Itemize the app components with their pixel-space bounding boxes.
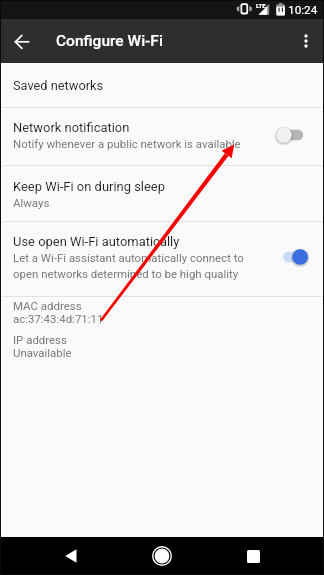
button[interactable]: On — [274, 246, 306, 268]
button[interactable]: Off — [274, 124, 306, 146]
staticText: Configure Wi-Fi — [56, 32, 163, 50]
button[interactable]: Use open Wi-Fi automatically — [0, 222, 324, 296]
button[interactable]: Saved networks — [0, 63, 324, 107]
button[interactable]: IP address — [0, 333, 324, 359]
button[interactable]: Recent apps — [235, 538, 271, 574]
button[interactable]: More options — [292, 27, 320, 55]
staticText: Keep Wi-Fi on during sleep — [13, 179, 165, 194]
staticText: ac:37:43:4d:71:11 — [13, 312, 104, 325]
staticText: Network notification — [13, 120, 130, 135]
staticText: LTE — [256, 2, 266, 9]
button[interactable]: Keep Wi-Fi on during sleep — [0, 166, 324, 221]
button[interactable]: Network notification — [0, 108, 324, 165]
staticText: IP address — [13, 333, 67, 346]
button[interactable]: Navigate up — [7, 26, 37, 56]
staticText: Saved networks — [13, 78, 104, 93]
staticText: Use open Wi-Fi automatically — [13, 234, 180, 249]
button[interactable]: MAC address — [0, 299, 324, 325]
staticText: Notify whenever a public network is avai… — [13, 137, 241, 150]
staticText: Always — [13, 196, 50, 209]
staticText: Unavailable — [13, 346, 72, 359]
button[interactable]: Back — [53, 538, 89, 574]
staticText: MAC address — [13, 299, 82, 312]
button[interactable]: Home — [144, 538, 180, 574]
staticText: Let a Wi-Fi assistant automatically conn… — [13, 251, 247, 281]
staticText: 10:24 — [288, 3, 318, 17]
